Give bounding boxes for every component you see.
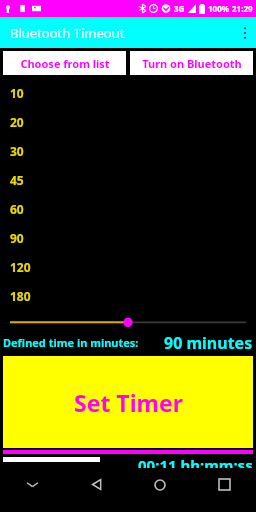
button[interactable]: Recent apps [192,470,256,499]
button[interactable]: Choose from list [3,51,126,75]
staticText: 10 [10,85,24,101]
staticText: 100% [208,3,229,14]
staticText: 90 minutes [164,332,253,354]
staticText: 20 [10,114,24,130]
staticText: 21:29 [232,3,253,14]
staticText: Bluetooth Timeout [10,24,125,42]
staticText: 180 [10,288,31,304]
staticText: 30 [10,143,24,159]
button[interactable]: Set Timer [3,356,253,448]
staticText: 90 [10,230,24,246]
staticText: Defined time in minutes: [3,335,139,350]
staticText: Turn on Bluetooth [142,56,242,71]
staticText: 45 [10,172,24,188]
button[interactable]: 120 [0,252,256,281]
staticText: 00:11 hh:mm:ss [138,455,253,468]
button[interactable]: Turn on Bluetooth [130,51,253,75]
staticText: Set Timer [74,387,183,418]
button[interactable]: Timeout slider [0,313,256,331]
button[interactable]: 30 [0,136,256,165]
staticText: 120 [10,259,31,275]
staticText: 60 [10,201,24,217]
button[interactable]: Home [128,470,192,499]
button[interactable]: 20 [0,107,256,136]
button[interactable]: Hide navigation bar [0,470,64,499]
button[interactable]: More options [234,17,256,48]
staticText: 3G [174,3,185,14]
button[interactable]: 90 [0,223,256,252]
button[interactable]: 45 [0,165,256,194]
button[interactable]: 180 [0,281,256,310]
button[interactable]: 10 [0,78,256,107]
staticText: Choose from list [20,56,110,71]
button[interactable]: 60 [0,194,256,223]
button[interactable]: Back [64,470,128,499]
